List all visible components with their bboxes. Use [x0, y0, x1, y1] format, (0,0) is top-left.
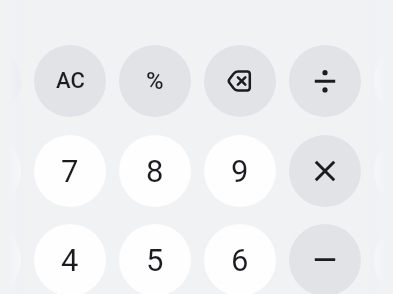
button[interactable] — [289, 45, 361, 117]
button[interactable]: 6 — [204, 224, 276, 294]
button[interactable] — [289, 224, 361, 294]
staticText: % — [146, 67, 164, 95]
button[interactable]: AC — [34, 45, 106, 117]
staticText: 4 — [61, 242, 79, 278]
button[interactable]: % — [119, 45, 191, 117]
staticText: 6 — [231, 242, 249, 278]
button[interactable] — [289, 135, 361, 207]
button[interactable]: 9 — [204, 135, 276, 207]
staticText: 8 — [146, 153, 164, 189]
staticText: 9 — [231, 153, 249, 189]
button[interactable]: 7 — [34, 135, 106, 207]
staticText: 5 — [146, 242, 164, 278]
button[interactable]: 8 — [119, 135, 191, 207]
staticText: 7 — [61, 153, 79, 189]
button[interactable] — [204, 45, 276, 117]
button[interactable]: 4 — [34, 224, 106, 294]
staticText: AC — [56, 68, 85, 94]
button[interactable]: 5 — [119, 224, 191, 294]
